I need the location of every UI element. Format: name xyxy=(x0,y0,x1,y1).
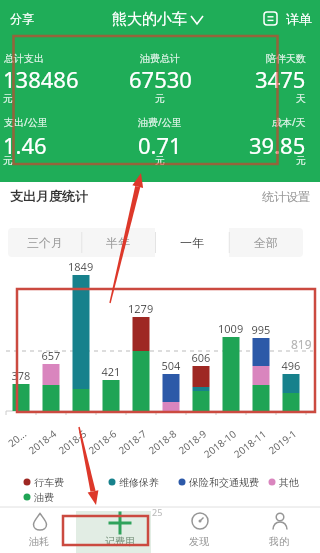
staticText: 25 xyxy=(152,506,163,518)
staticText: 我的 xyxy=(269,535,289,548)
staticText: 3475 xyxy=(255,64,306,94)
staticText: 一年 xyxy=(180,235,204,250)
staticText: 三个月 xyxy=(27,235,63,250)
staticText: 记费用 xyxy=(105,535,135,548)
staticText: 陪伴天数 xyxy=(266,52,306,65)
staticText: 元 xyxy=(155,92,165,105)
staticText: 支出/公里 xyxy=(4,115,48,129)
staticText: 67530 xyxy=(129,64,192,94)
staticText: 0.71 xyxy=(138,130,182,160)
staticText: 油费/公里 xyxy=(138,115,182,129)
staticText: 元 xyxy=(155,154,165,167)
staticText: 熊大的小车 xyxy=(112,10,187,29)
staticText: 分享 xyxy=(10,11,34,26)
staticText: 成本/天 xyxy=(272,115,306,129)
staticText: 油费总计 xyxy=(140,52,180,65)
staticText: 138486 xyxy=(3,64,79,94)
staticText: 统计设置 xyxy=(262,189,310,204)
staticText: 总计支出 xyxy=(4,52,44,65)
staticText: 元 xyxy=(3,92,13,105)
staticText: 油耗 xyxy=(29,535,49,548)
staticText: 半年 xyxy=(106,235,130,250)
staticText: 1.46 xyxy=(3,130,47,160)
staticText: 发现 xyxy=(189,535,209,548)
staticText: 元 xyxy=(296,154,306,167)
staticText: 元 xyxy=(3,154,13,167)
staticText: 天 xyxy=(296,92,306,105)
staticText: 全部 xyxy=(254,235,278,250)
staticText: 支出月度统计 xyxy=(10,188,88,204)
staticText: 详单 xyxy=(286,11,312,27)
staticText: 39.85 xyxy=(249,130,306,160)
